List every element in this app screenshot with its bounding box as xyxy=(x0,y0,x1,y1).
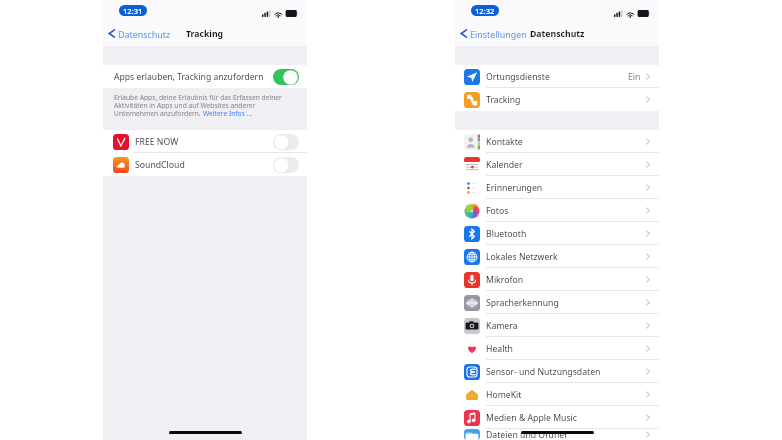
staticText: Tracking xyxy=(486,94,521,106)
button[interactable]: Toggle off xyxy=(273,134,299,150)
staticText: 12:31 xyxy=(123,6,143,16)
button[interactable]: Fotos xyxy=(455,199,659,222)
staticText: Ein xyxy=(628,71,641,83)
staticText: Aktivitäten in Apps und auf Websites and… xyxy=(114,101,256,109)
button[interactable]: Erinnerungen xyxy=(455,176,659,199)
staticText: Medien & Apple Music xyxy=(486,412,577,424)
button[interactable]: Dateien und Ordner xyxy=(455,429,659,440)
staticText: Ortungsdienste xyxy=(486,71,550,83)
button[interactable]: Datenschutz xyxy=(108,21,171,46)
staticText: Mikrofon xyxy=(486,274,524,286)
button[interactable]: Health xyxy=(455,337,659,360)
staticText: HomeKit xyxy=(486,389,522,401)
staticText: Spracherkennung xyxy=(486,297,559,309)
button[interactable]: Sensor- und Nutzungsdaten xyxy=(455,360,659,383)
staticText: Erlaube Apps, deine Erlaubnis für das Er… xyxy=(114,93,282,101)
button[interactable]: Tracking xyxy=(455,88,659,111)
staticText: Einstellungen xyxy=(470,28,527,40)
staticText: Dateien und Ordner xyxy=(486,429,568,440)
staticText: Bluetooth xyxy=(486,228,527,240)
button[interactable]: Medien & Apple Music xyxy=(455,406,659,429)
button[interactable]: Kontakte xyxy=(455,130,659,153)
staticText: Kalender xyxy=(486,159,523,171)
staticText: Kamera xyxy=(486,320,518,332)
staticText: Apps erlauben, Tracking anzufordern xyxy=(114,71,264,83)
staticText: Datenschutz xyxy=(118,28,171,40)
button[interactable]: Bluetooth xyxy=(455,222,659,245)
button[interactable]: HomeKit xyxy=(455,383,659,406)
staticText: Lokales Netzwerk xyxy=(486,251,558,263)
button[interactable]: Apps erlauben, Tracking anzufordern xyxy=(103,65,307,88)
button[interactable]: SoundCloud xyxy=(103,153,307,176)
staticText: 12:32 xyxy=(475,6,495,16)
button[interactable]: Lokales Netzwerk xyxy=(455,245,659,268)
button[interactable]: FREE NOW xyxy=(103,130,307,153)
button[interactable]: Einstellungen xyxy=(460,21,527,46)
staticText: Weitere Infos ... xyxy=(203,109,252,117)
staticText: Sensor- und Nutzungsdaten xyxy=(486,366,601,378)
staticText: Unternehmen anzufordern. xyxy=(114,109,203,117)
button[interactable]: Kalender xyxy=(455,153,659,176)
staticText: SoundCloud xyxy=(135,159,185,171)
staticText: Datenschutz xyxy=(530,28,585,40)
button[interactable]: Mikrofon xyxy=(455,268,659,291)
staticText: Kontakte xyxy=(486,136,523,148)
staticText: Fotos xyxy=(486,205,509,217)
button[interactable]: Toggle off xyxy=(273,157,299,173)
button[interactable]: Spracherkennung xyxy=(455,291,659,314)
button[interactable]: Kamera xyxy=(455,314,659,337)
staticText: Tracking xyxy=(186,28,224,40)
staticText: FREE NOW xyxy=(135,136,179,148)
staticText: Health xyxy=(486,343,513,355)
button[interactable]: Toggle on xyxy=(273,69,299,85)
button[interactable]: Ortungsdienste xyxy=(455,65,659,88)
staticText: Erinnerungen xyxy=(486,182,543,194)
